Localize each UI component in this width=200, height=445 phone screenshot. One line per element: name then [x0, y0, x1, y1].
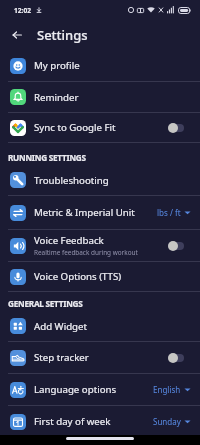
button[interactable]: Toggle — [168, 239, 192, 253]
button[interactable]: Add Widget — [0, 311, 200, 341]
staticText: Language options — [34, 383, 117, 396]
staticText: English — [153, 384, 181, 395]
staticText: Metric & Imperial Unit — [34, 206, 135, 219]
staticText: Sunday — [153, 416, 181, 427]
staticText: Voice Feedback — [34, 234, 104, 247]
button[interactable]: Language options — [0, 374, 200, 405]
staticText: Settings — [37, 26, 88, 44]
staticText: Step tracker — [34, 351, 89, 364]
staticText: lbs / ft — [157, 207, 181, 218]
staticText: My profile — [34, 59, 80, 72]
staticText: Voice Options (TTS) — [34, 270, 122, 283]
staticText: First day of week — [34, 415, 111, 428]
staticText: Sync to Google Fit — [34, 121, 116, 134]
staticText: Reminder — [34, 91, 79, 104]
button[interactable]: My profile — [0, 50, 200, 81]
button[interactable]: lbs / ft — [156, 207, 192, 218]
button[interactable]: Metric & Imperial Unit — [0, 196, 200, 229]
button[interactable]: Voice Feedback — [0, 230, 200, 261]
button[interactable]: First day of week — [0, 406, 200, 437]
button[interactable]: Troubleshooting — [0, 165, 200, 195]
button[interactable]: Back — [5, 23, 29, 47]
button[interactable]: Toggle — [168, 121, 192, 135]
button[interactable]: Toggle — [168, 351, 192, 365]
staticText: Add Widget — [34, 320, 88, 333]
button[interactable]: English — [152, 384, 192, 395]
staticText: Realtime feedback during workout — [34, 248, 138, 257]
button[interactable]: Sync to Google Fit — [0, 113, 200, 142]
staticText: GENERAL SETTINGS — [8, 298, 83, 309]
staticText: RUNNING SETTINGS — [8, 152, 86, 163]
button[interactable]: Voice Options (TTS) — [0, 262, 200, 291]
staticText: Troubleshooting — [34, 174, 109, 187]
button[interactable]: Sunday — [152, 416, 192, 427]
button[interactable]: Step tracker — [0, 342, 200, 373]
staticText: 12:02 — [14, 6, 31, 15]
button[interactable]: Reminder — [0, 82, 200, 112]
